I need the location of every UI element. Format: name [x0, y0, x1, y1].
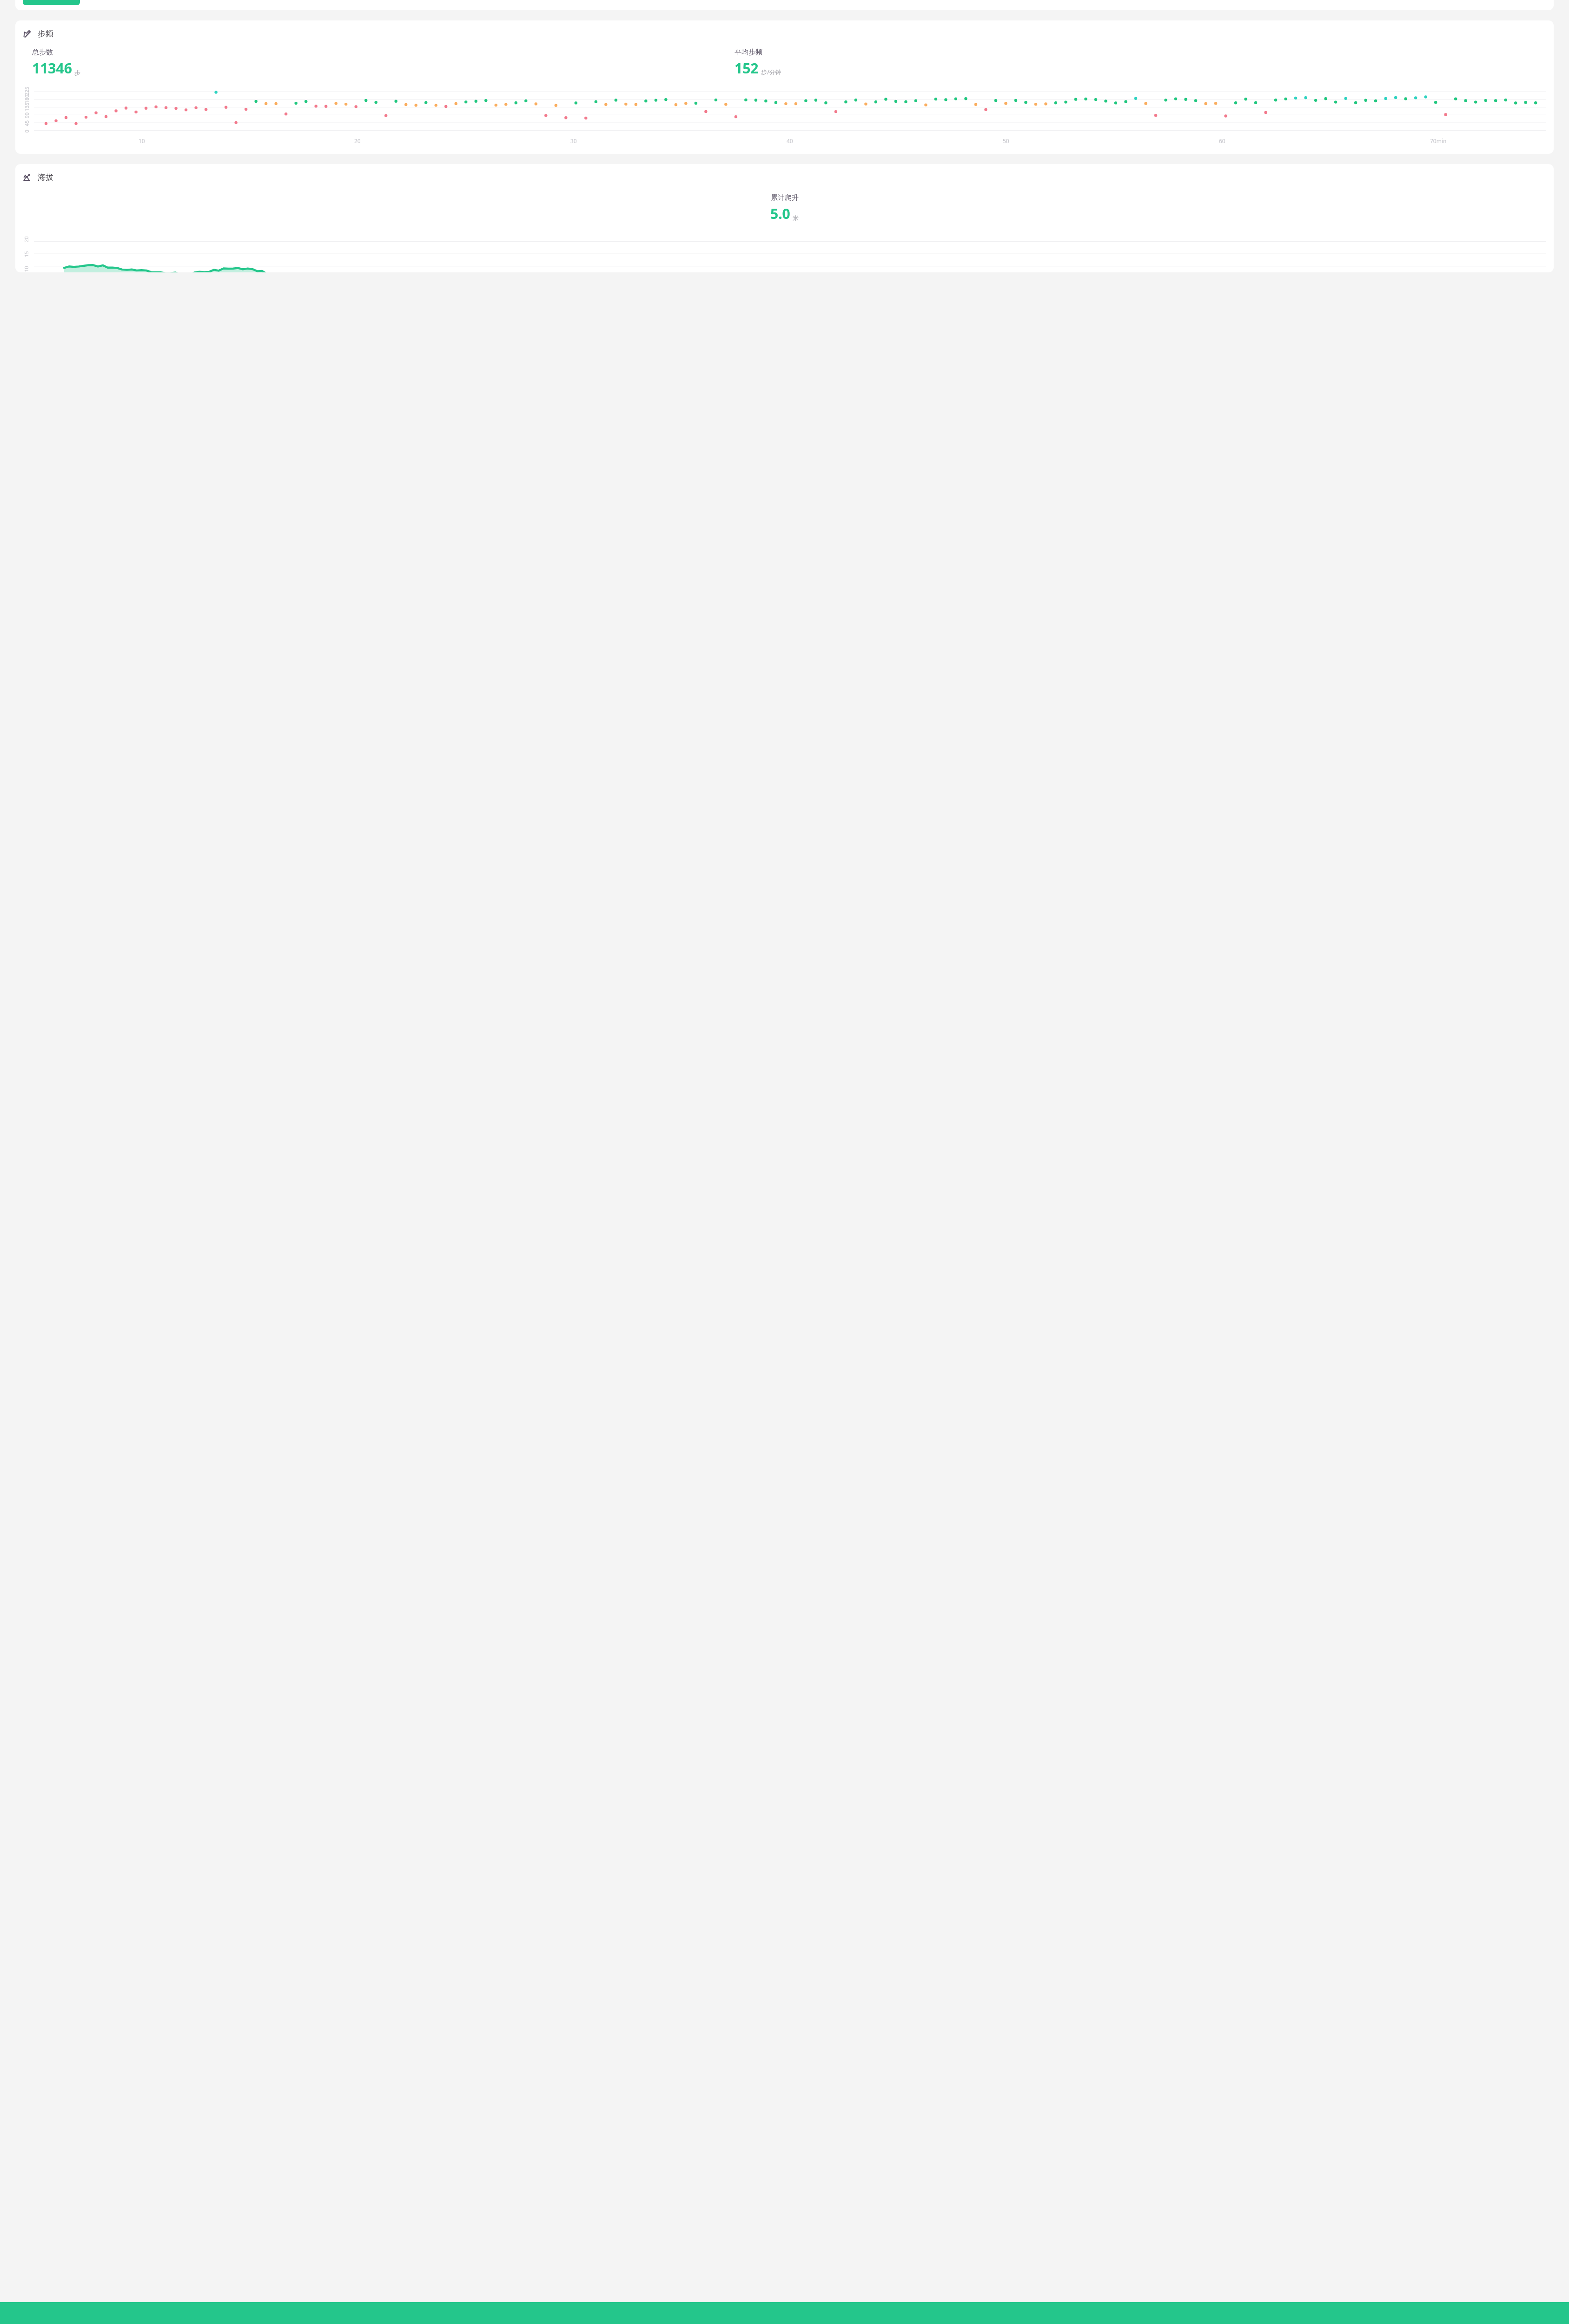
staticText: 40 [787, 137, 793, 145]
staticText: 20 [354, 137, 361, 145]
staticText: 5.0 [770, 204, 790, 223]
staticText: 步 [74, 69, 80, 76]
button[interactable]: 海拔 [15, 164, 1554, 272]
staticText: 米 [793, 214, 799, 222]
staticText: 152 [735, 59, 759, 78]
staticText: 225 [23, 87, 30, 96]
staticText: 海拔 [38, 172, 53, 182]
staticText: 70min [1430, 137, 1447, 145]
staticText: 平均步频 [735, 48, 762, 57]
staticText: 30 [570, 137, 577, 145]
button[interactable]: 步频 [15, 20, 1554, 154]
staticText: 总步数 [32, 48, 53, 57]
staticText: 45 [23, 120, 30, 126]
staticText: 0 [23, 129, 30, 133]
button[interactable]: Continue [0, 2302, 1569, 2324]
staticText: 135 [23, 102, 30, 111]
staticText: 10 [23, 266, 30, 272]
staticText: 60 [1219, 137, 1225, 145]
staticText: 累计爬升 [771, 193, 799, 202]
staticText: 15 [23, 251, 30, 257]
staticText: 10 [139, 137, 145, 145]
staticText: 步/分钟 [761, 68, 781, 76]
staticText: 11346 [32, 59, 72, 78]
staticText: 50 [1003, 137, 1009, 145]
staticText: 180 [23, 95, 30, 103]
staticText: 90 [23, 112, 30, 118]
button[interactable]: Action [15, 0, 1554, 10]
staticText: 20 [23, 236, 30, 242]
staticText: 步频 [38, 29, 53, 39]
